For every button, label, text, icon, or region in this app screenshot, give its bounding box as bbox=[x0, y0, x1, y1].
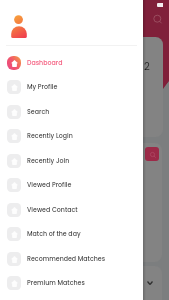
staticText: Viewed Profile bbox=[27, 180, 72, 189]
staticText: Premium Matches bbox=[27, 278, 85, 287]
button[interactable]: Viewed Profile bbox=[0, 172, 143, 197]
button[interactable]: Favourite bbox=[145, 147, 159, 161]
button[interactable]: Premium Matches bbox=[0, 270, 143, 295]
staticText: Recommended Matches bbox=[27, 254, 106, 263]
staticText: My Profile bbox=[27, 82, 58, 91]
staticText: 2 bbox=[144, 59, 150, 73]
staticText: Search bbox=[27, 107, 50, 116]
staticText: Recently Login bbox=[27, 131, 73, 140]
button[interactable]: Search bbox=[152, 13, 164, 25]
button[interactable]: Dashboard bbox=[0, 50, 143, 75]
button[interactable]: Recently Join bbox=[0, 148, 143, 173]
staticText: Viewed Contact bbox=[27, 205, 78, 214]
button[interactable]: My Profile bbox=[0, 74, 143, 99]
staticText: Dashboard bbox=[27, 58, 63, 67]
button[interactable]: Match of the day bbox=[0, 221, 143, 246]
button[interactable]: Search bbox=[0, 99, 143, 124]
button[interactable]: Recommended Matches bbox=[0, 246, 143, 271]
other: Expand bbox=[147, 281, 153, 285]
button[interactable]: Recently Login bbox=[0, 123, 143, 148]
staticText: Match of the day bbox=[27, 229, 81, 238]
button[interactable]: Viewed Contact bbox=[0, 197, 143, 222]
staticText: Recently Join bbox=[27, 156, 70, 165]
